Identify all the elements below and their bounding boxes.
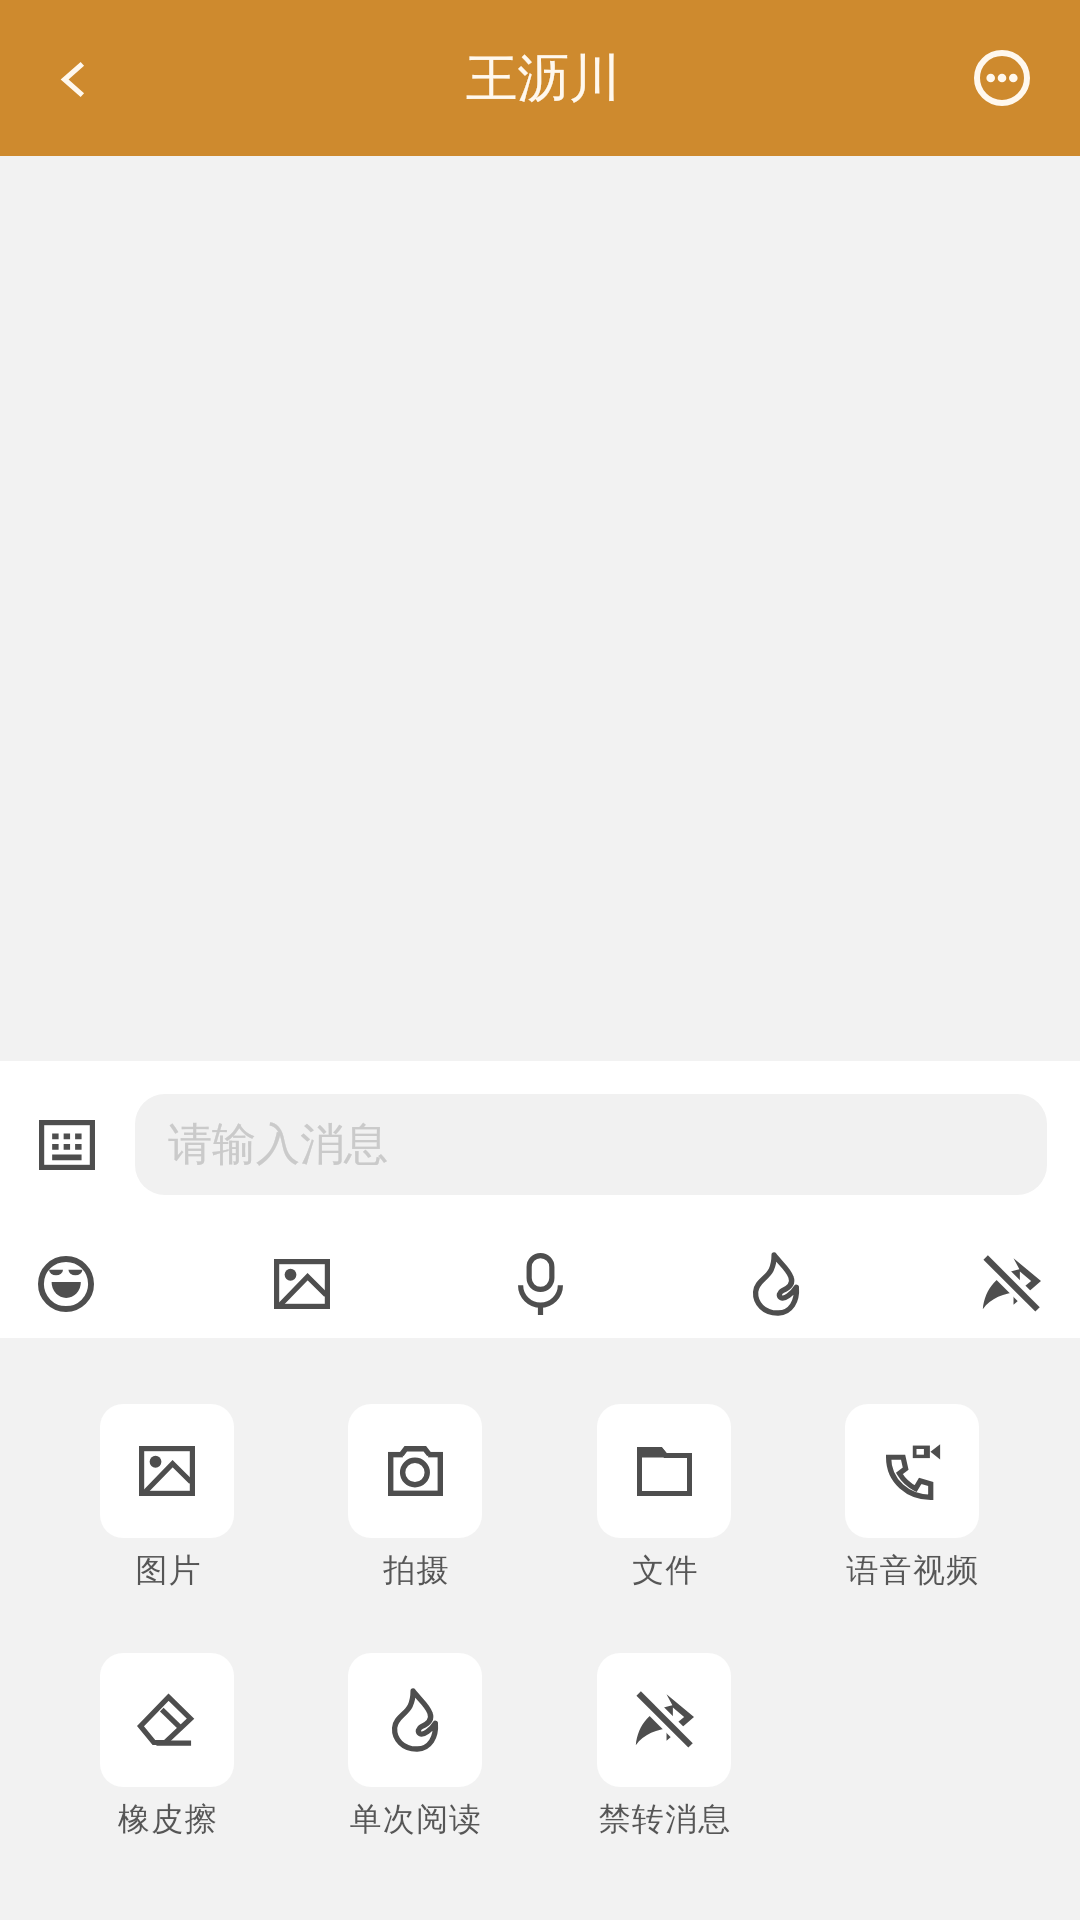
button[interactable]: 橡皮擦 [100, 1653, 234, 1787]
staticText: 单次阅读 [349, 1799, 483, 1839]
button[interactable]: Photo [244, 1220, 360, 1347]
staticText: 王沥川 [466, 46, 621, 111]
button[interactable]: 单次阅读 [348, 1653, 482, 1787]
button[interactable]: 禁转消息 [597, 1653, 731, 1787]
button[interactable]: More options [924, 0, 1080, 156]
button[interactable]: Back [0, 0, 140, 156]
button[interactable]: 语音视频 [845, 1404, 979, 1538]
staticText: 拍摄 [383, 1550, 450, 1590]
button[interactable]: Disable forwarding [953, 1220, 1069, 1347]
button[interactable]: Burn after reading [718, 1220, 834, 1347]
button[interactable]: 拍摄 [348, 1404, 482, 1538]
button[interactable]: 文件 [597, 1404, 731, 1538]
button[interactable]: 请输入消息 [135, 1094, 1047, 1195]
staticText: 禁转消息 [598, 1799, 732, 1839]
button[interactable]: Keyboard [11, 1089, 123, 1201]
button[interactable]: Emoji [8, 1220, 124, 1347]
staticText: 语音视频 [846, 1550, 980, 1590]
staticText: 请输入消息 [168, 1117, 388, 1172]
button[interactable]: Voice message [482, 1220, 598, 1347]
staticText: 图片 [135, 1550, 202, 1590]
staticText: 文件 [632, 1550, 699, 1590]
button[interactable]: 图片 [100, 1404, 234, 1538]
staticText: 橡皮擦 [118, 1799, 218, 1839]
